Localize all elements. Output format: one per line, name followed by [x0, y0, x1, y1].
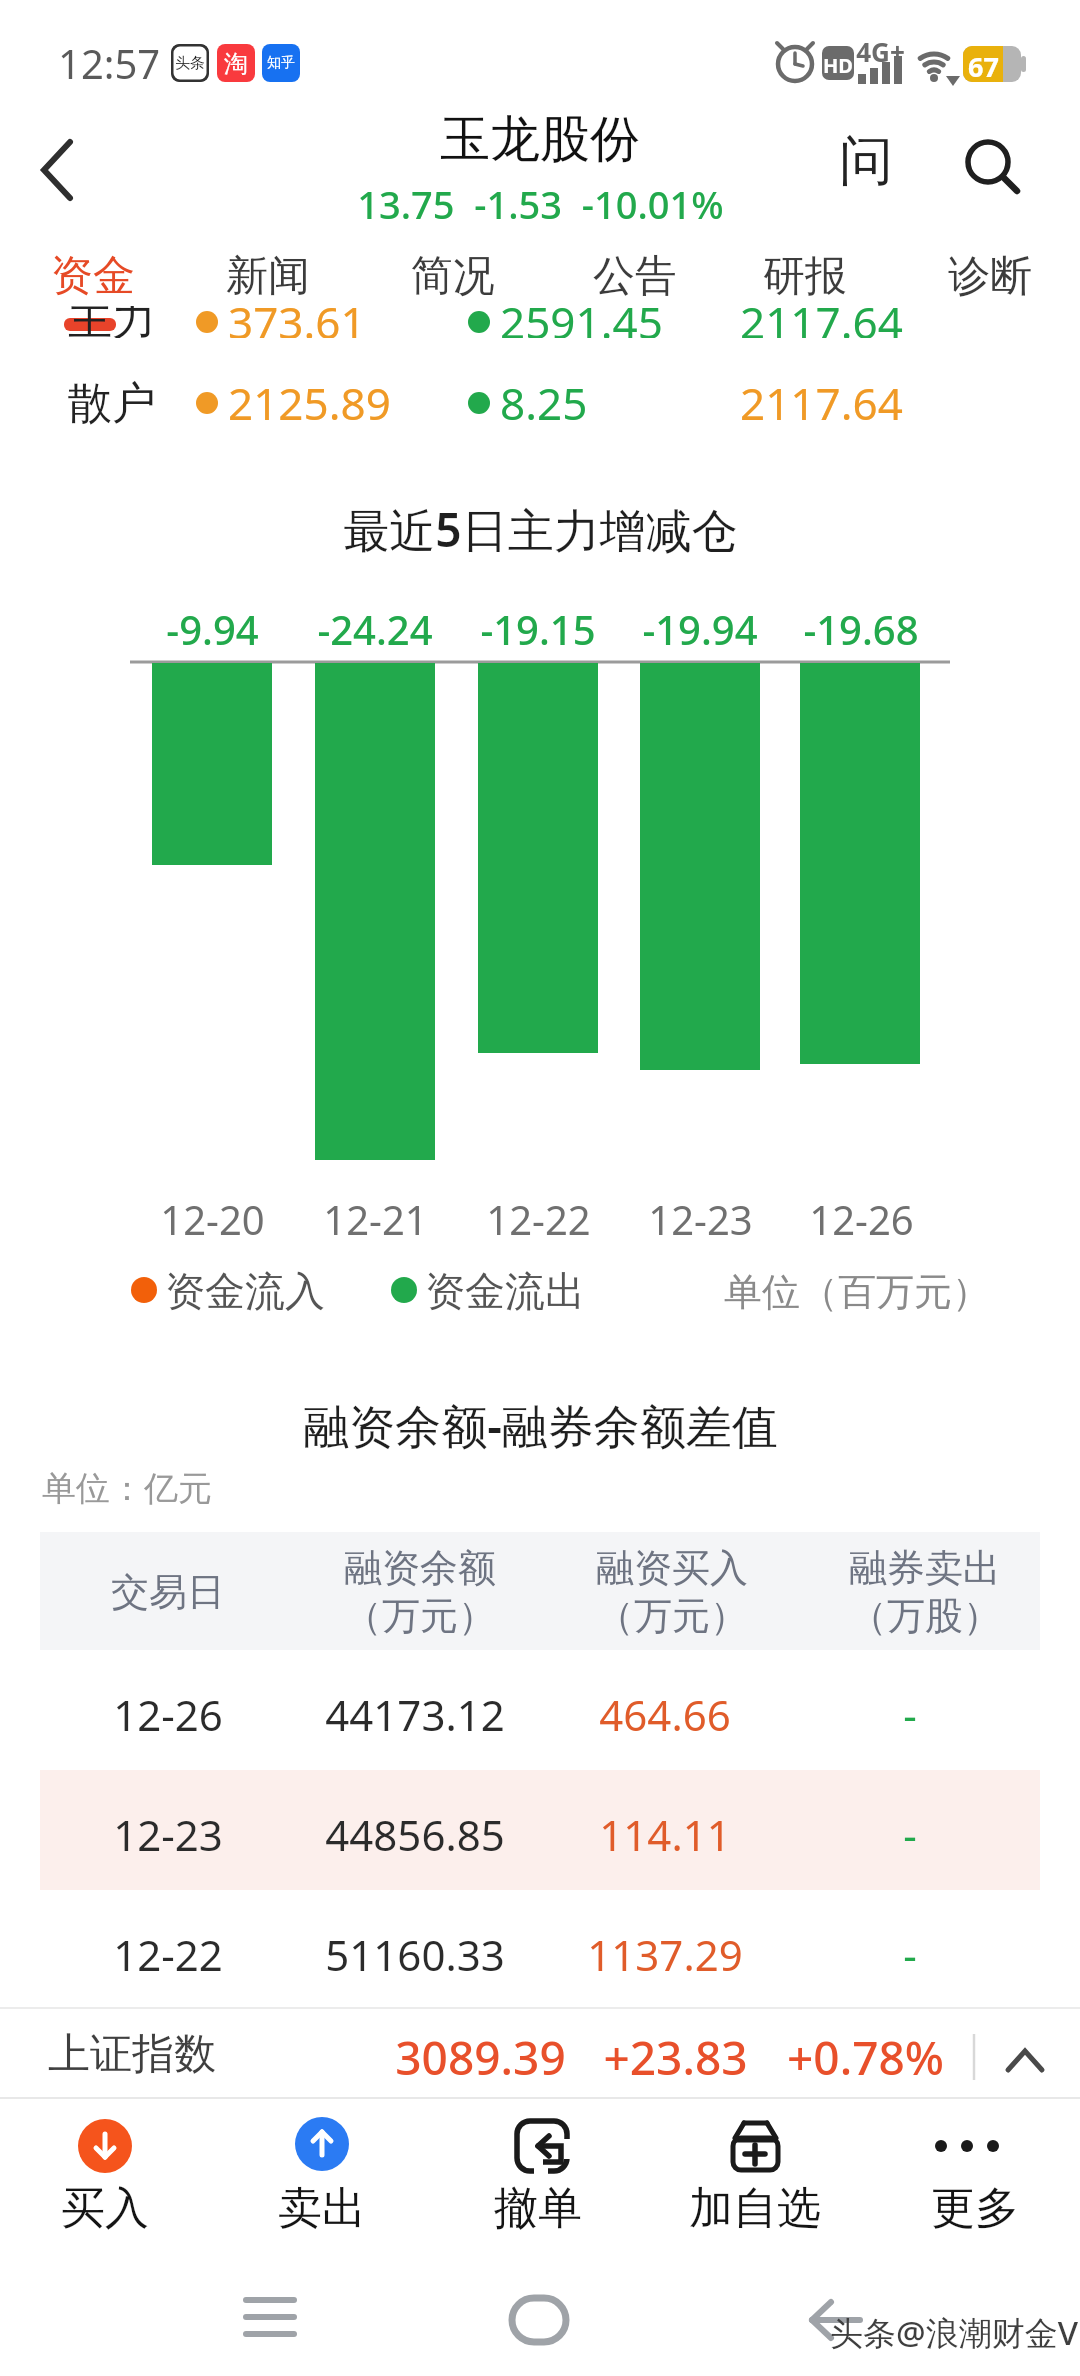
button[interactable]	[950, 126, 1030, 202]
staticText: 融资买入 （万元）	[596, 1544, 748, 1640]
staticText: 最近5日主力增减仓	[343, 498, 738, 560]
staticText: 加自选	[689, 2181, 821, 2236]
staticText: 12-22	[113, 1926, 223, 1974]
staticText: 新闻	[226, 250, 310, 303]
staticText: 问	[839, 127, 893, 195]
staticText: HD	[823, 52, 853, 76]
staticText: 3089.39	[395, 2026, 566, 2078]
staticText: 买入	[61, 2181, 149, 2236]
staticText: 114.11	[599, 1806, 731, 1854]
staticText: 玉龙股份	[440, 108, 640, 170]
staticText: 资金	[51, 250, 135, 303]
staticText: 12-26	[809, 1192, 914, 1240]
staticText: -19.94	[642, 602, 758, 650]
staticText: 融资余额-融券余额差值	[303, 1394, 778, 1456]
button[interactable]	[237, 2102, 407, 2242]
staticText: 单位（百万元）	[724, 1268, 990, 1312]
staticText: 资金流入	[165, 1266, 325, 1314]
staticText: 67	[968, 48, 999, 80]
button[interactable]	[20, 2102, 190, 2242]
staticText: 公告	[593, 250, 677, 303]
staticText: 44856.85	[325, 1806, 505, 1854]
staticText: 研报	[763, 250, 847, 303]
button[interactable]: 新闻	[208, 244, 328, 308]
button[interactable]: 公告	[575, 244, 695, 308]
button[interactable]	[28, 130, 98, 210]
staticText: 淘	[224, 49, 248, 77]
staticText: +0.78%	[787, 2026, 944, 2078]
staticText: 资金流出	[425, 1266, 585, 1314]
button[interactable]	[40, 1650, 1040, 1770]
staticText: 融券卖出 （万股）	[849, 1544, 1001, 1640]
staticText: 融资余额 （万元）	[344, 1544, 496, 1640]
button[interactable]: 诊断	[930, 244, 1050, 308]
staticText: 12-21	[323, 1192, 428, 1240]
staticText: 卖出	[278, 2181, 366, 2236]
staticText: 上证指数	[48, 2028, 216, 2080]
staticText: -9.94	[166, 602, 259, 650]
staticText: 12-23	[113, 1806, 223, 1854]
staticText: -	[903, 1806, 917, 1854]
staticText: 12:57	[58, 36, 161, 86]
staticText: 8.25	[500, 373, 588, 433]
staticText: -24.24	[317, 602, 433, 650]
staticText: 464.66	[599, 1686, 731, 1734]
staticText: 12-20	[160, 1192, 265, 1240]
staticText: 2591.45	[500, 306, 663, 338]
staticText: -19.68	[803, 602, 919, 650]
staticText: 撤单	[494, 2181, 582, 2236]
staticText: 诊断	[948, 250, 1032, 303]
staticText: 12-22	[486, 1192, 591, 1240]
button[interactable]: 简况	[393, 244, 513, 308]
button[interactable]	[453, 2102, 623, 2242]
staticText: 4G+	[856, 34, 905, 64]
staticText: 头条	[175, 54, 205, 72]
staticText: 简况	[411, 250, 495, 303]
button[interactable]: 问	[828, 126, 904, 196]
button[interactable]	[230, 2284, 310, 2354]
staticText: 2117.64	[740, 306, 903, 338]
staticText: 51160.33	[325, 1926, 505, 1974]
staticText: 散户	[68, 376, 156, 431]
staticText: -	[903, 1926, 917, 1974]
button[interactable]	[670, 2102, 840, 2242]
staticText: 知乎	[267, 54, 295, 72]
button[interactable]	[990, 2030, 1060, 2086]
staticText: 交易日	[111, 1568, 225, 1614]
staticText: 44173.12	[325, 1686, 505, 1734]
staticText: 更多	[931, 2181, 1019, 2236]
staticText: 12-26	[113, 1686, 223, 1734]
staticText: 12-23	[648, 1192, 753, 1240]
staticText: 单位：亿元	[42, 1467, 212, 1510]
staticText: -19.15	[480, 602, 596, 650]
staticText: 2125.89	[228, 373, 391, 433]
staticText: 373.61	[228, 306, 366, 338]
button[interactable]	[796, 2284, 876, 2354]
button[interactable]	[40, 1890, 1040, 2010]
staticText: -	[903, 1686, 917, 1734]
staticText: +23.83	[603, 2026, 748, 2078]
button[interactable]	[890, 2102, 1060, 2242]
button[interactable]	[40, 1770, 1040, 1890]
staticText: 1137.29	[587, 1926, 743, 1974]
button[interactable]	[500, 2284, 580, 2354]
staticText: 2117.64	[740, 373, 903, 433]
button[interactable]: 资金	[33, 244, 153, 308]
staticText: 13.75 -1.53 -10.01%	[357, 178, 724, 224]
staticText: 头条@浪潮财金V	[830, 2310, 1078, 2355]
button[interactable]: 研报	[745, 244, 865, 308]
staticText: 主力	[68, 306, 156, 338]
